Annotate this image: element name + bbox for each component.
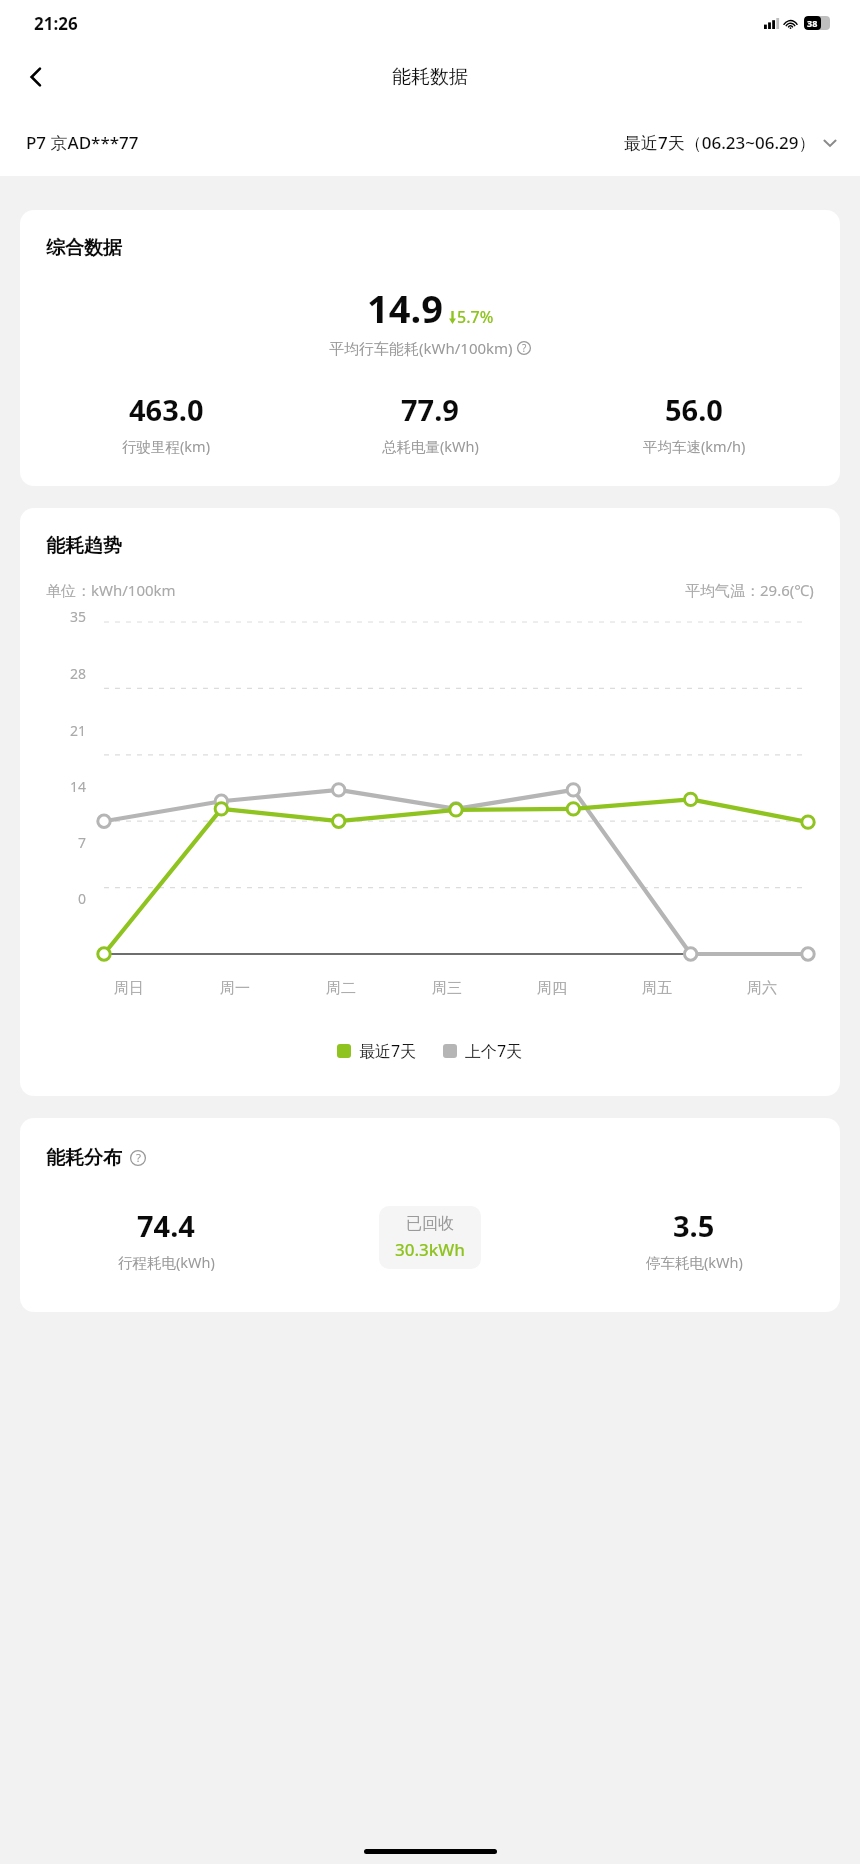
staticText: 平均车速(km/h): [643, 436, 746, 456]
staticText: 周四: [537, 979, 567, 998]
staticText: 最近7天: [359, 1040, 417, 1062]
staticText: 0: [77, 889, 86, 908]
staticText: 周一: [220, 979, 250, 998]
staticText: 463.0: [129, 390, 204, 429]
staticText: 38: [807, 17, 818, 29]
staticText: 21:26: [34, 12, 78, 35]
staticText: 周二: [326, 979, 356, 998]
staticText: 平均行车能耗(kWh/100km): [329, 338, 513, 358]
staticText: 综合数据: [46, 236, 122, 260]
staticText: 能耗趋势: [46, 534, 122, 558]
staticText: 总耗电量(kWh): [382, 436, 479, 456]
button[interactable]: Back: [14, 55, 58, 99]
staticText: 行程耗电(kWh): [118, 1252, 215, 1272]
staticText: 最近7天（06.23~06.29）: [624, 131, 816, 154]
staticText: 77.9: [401, 390, 459, 429]
staticText: 3.5: [673, 1206, 715, 1245]
staticText: P7 京AD***77: [26, 131, 139, 154]
staticText: 30.3kWh: [395, 1238, 465, 1261]
staticText: 14: [69, 777, 86, 796]
staticText: 单位：kWh/100km: [46, 580, 176, 600]
staticText: 停车耗电(kWh): [646, 1252, 743, 1272]
staticText: 周六: [747, 979, 777, 998]
staticText: 35: [69, 607, 86, 626]
staticText: 周五: [642, 979, 672, 998]
staticText: 周三: [432, 979, 462, 998]
staticText: 能耗数据: [392, 65, 468, 89]
staticText: 平均气温：29.6(℃): [685, 580, 814, 600]
staticText: 上个7天: [465, 1040, 523, 1062]
staticText: 能耗分布: [46, 1146, 122, 1170]
staticText: 14.9: [367, 282, 443, 334]
staticText: 74.4: [137, 1206, 195, 1245]
staticText: 周日: [114, 979, 144, 998]
staticText: 7: [77, 833, 86, 852]
staticText: 21: [69, 721, 86, 740]
staticText: 行驶里程(km): [122, 436, 211, 456]
staticText: 已回收: [406, 1214, 454, 1234]
staticText: 56.0: [665, 390, 723, 429]
button[interactable]: 最近7天（06.23~06.29）: [624, 131, 838, 154]
staticText: ?: [522, 341, 527, 355]
staticText: 5.7%: [457, 306, 494, 328]
staticText: ?: [136, 1150, 141, 1166]
staticText: 28: [69, 664, 86, 683]
